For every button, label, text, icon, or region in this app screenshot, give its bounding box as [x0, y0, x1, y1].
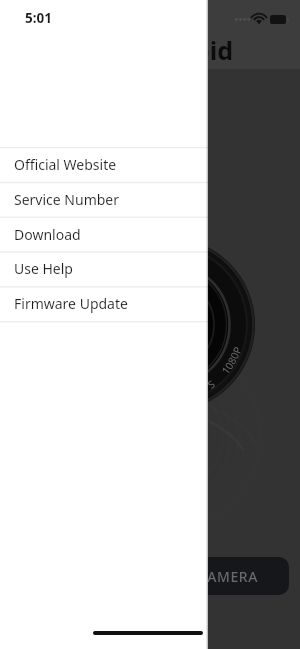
staticText: Firmware Update — [14, 294, 128, 313]
button[interactable]: ADD CAMERA — [138, 557, 289, 595]
button[interactable]: Firmware Update — [0, 286, 208, 321]
button[interactable]: Official Website — [0, 147, 208, 182]
staticText: Use Help — [14, 259, 73, 278]
staticText: Android — [134, 33, 233, 67]
button[interactable]: Use Help — [0, 251, 208, 286]
staticText: Official Website — [14, 155, 117, 174]
staticText: Service Number — [14, 190, 120, 209]
staticText: 5:01 — [25, 9, 52, 27]
button[interactable]: Download — [0, 217, 208, 252]
staticText: ADD CAMERA — [162, 567, 259, 586]
button[interactable]: Service Number — [0, 182, 208, 217]
staticText: Download — [14, 225, 81, 244]
